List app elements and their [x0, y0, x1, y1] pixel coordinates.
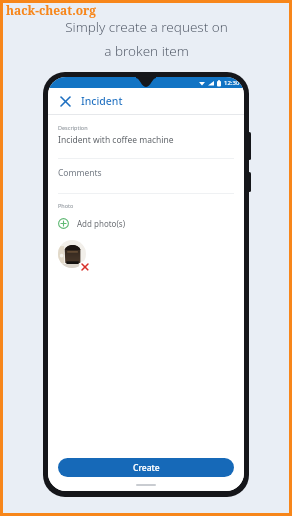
staticText: hack-cheat.org [6, 2, 97, 18]
button[interactable]: Attached photo [58, 240, 86, 268]
button[interactable]: Description [48, 115, 244, 158]
staticText: Simply create a request on [65, 18, 228, 36]
staticText: a broken item [104, 42, 189, 60]
staticText: Comments [58, 167, 102, 179]
staticText: Photo [58, 202, 74, 209]
button[interactable]: Close [56, 92, 74, 110]
staticText: 12:30 [224, 79, 240, 87]
staticText: Description [58, 124, 88, 131]
button[interactable]: Add photo(s) [48, 216, 244, 231]
button[interactable]: Comments [48, 159, 244, 193]
staticText: Create [133, 462, 160, 474]
staticText: Incident [81, 94, 123, 108]
button[interactable]: Remove photo [79, 261, 90, 272]
button[interactable]: Create [58, 458, 234, 477]
staticText: Incident with coffee machine [58, 134, 174, 146]
staticText: Add photo(s) [77, 218, 126, 229]
